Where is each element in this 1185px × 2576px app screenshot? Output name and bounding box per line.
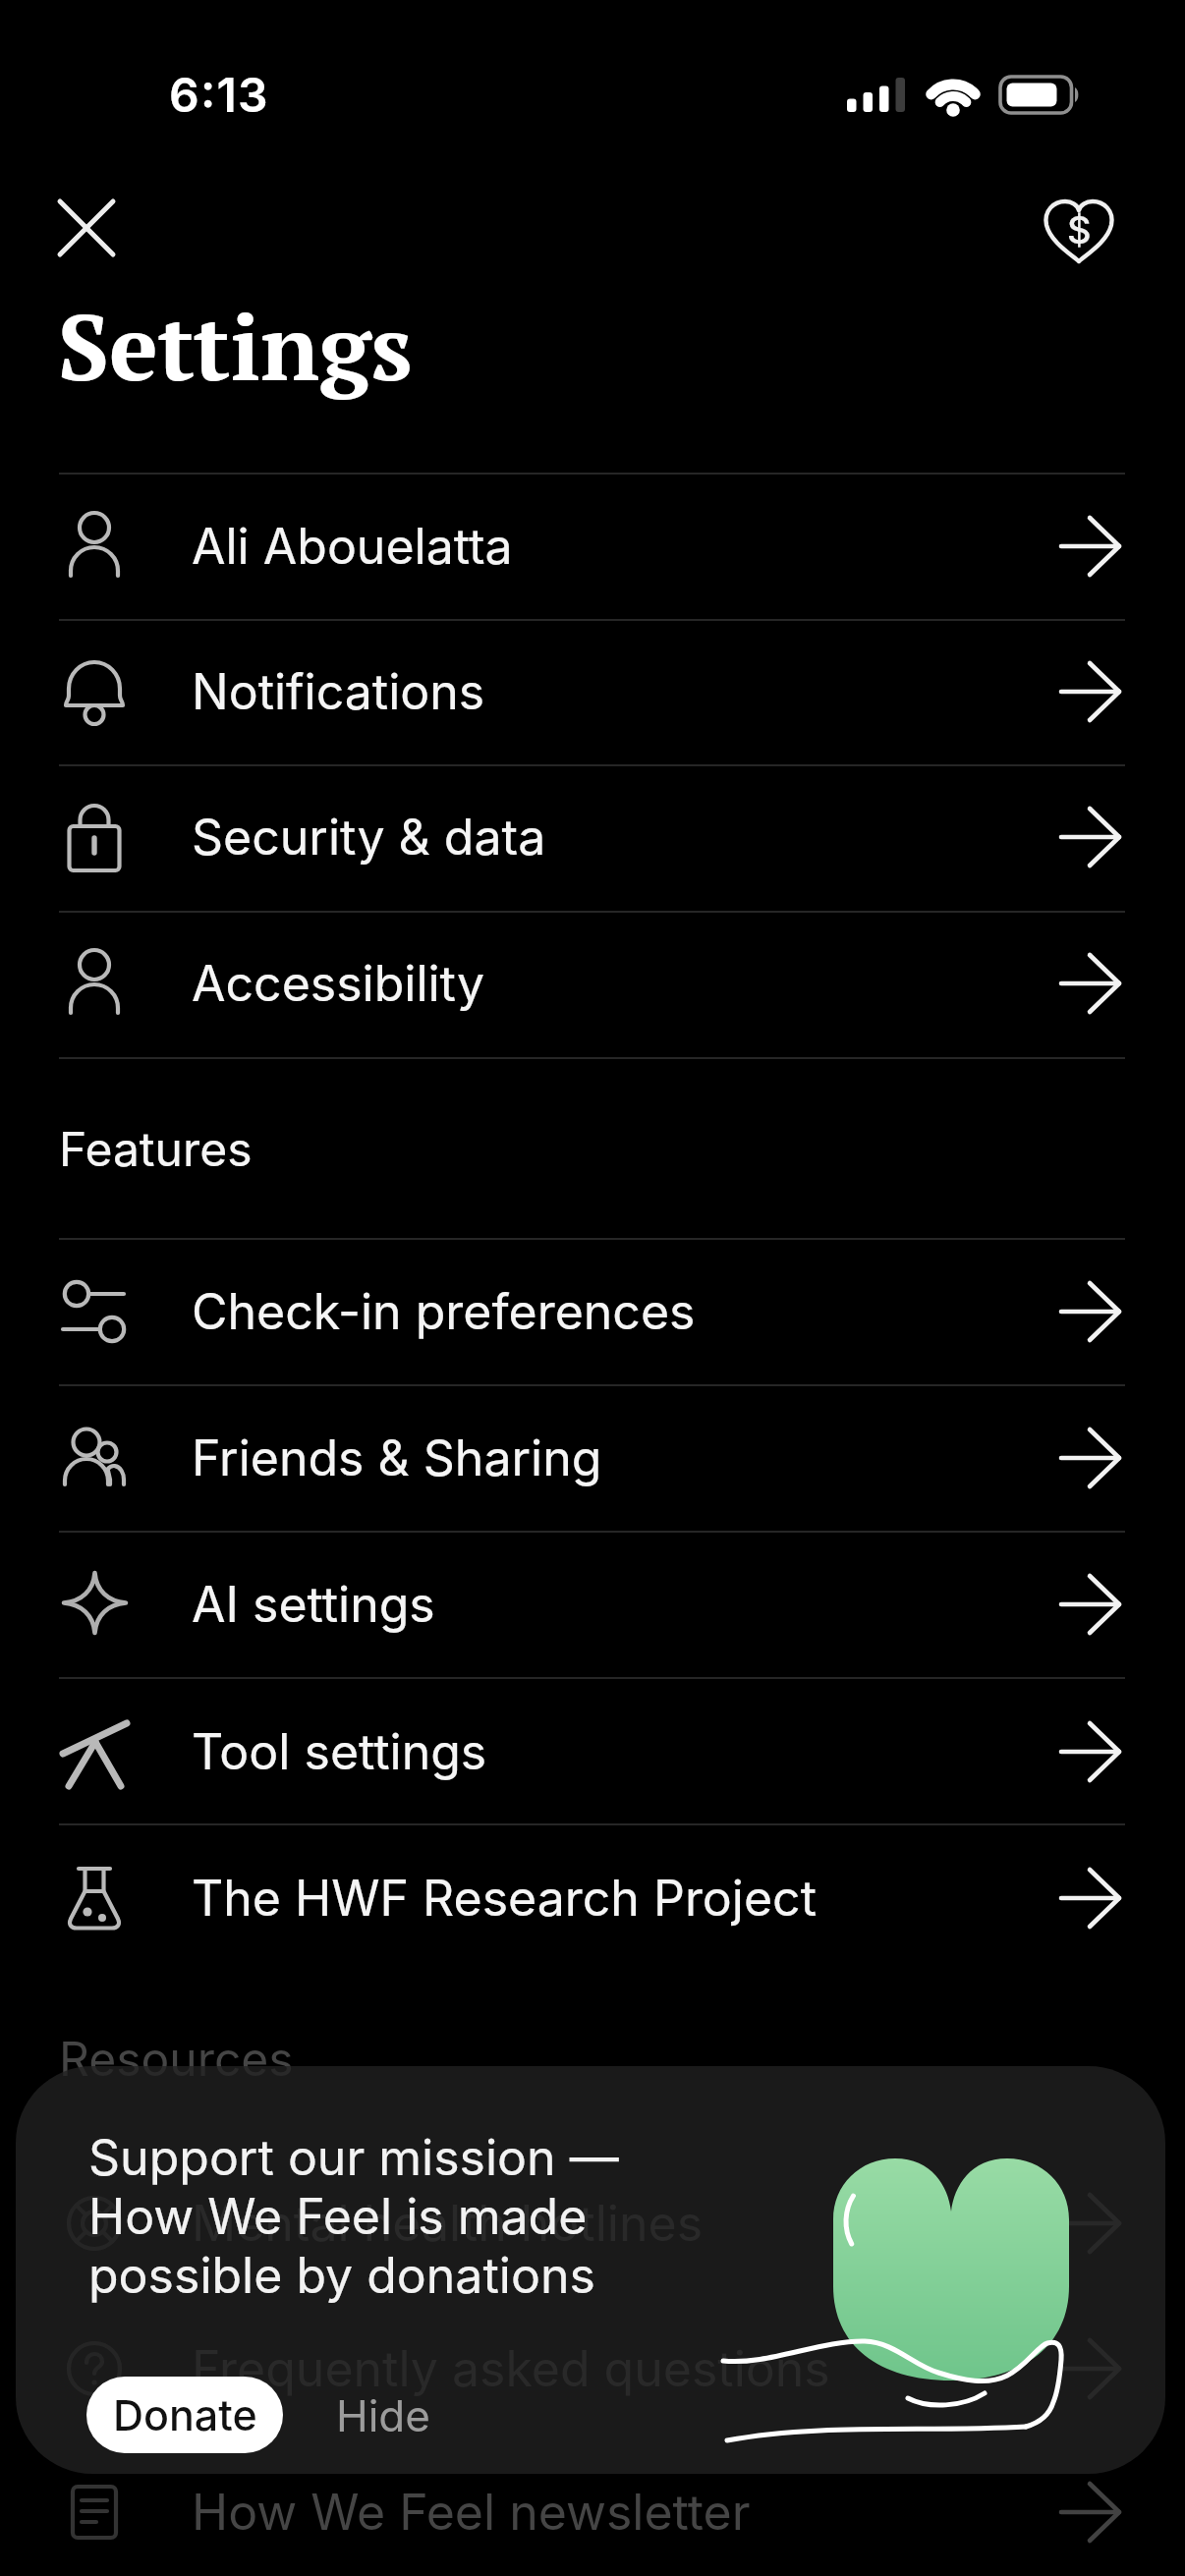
staticText: Notifications <box>192 662 485 721</box>
staticText: Resources <box>59 2030 294 2087</box>
button[interactable]: AI settings <box>0 1532 1185 1677</box>
button[interactable]: Hide <box>336 2377 430 2453</box>
button[interactable]: Tool settings <box>0 1679 1185 1824</box>
staticText: Accessibility <box>192 954 485 1013</box>
staticText: Frequently asked questions <box>192 2339 830 2398</box>
staticText: AI settings <box>192 1575 435 1634</box>
button[interactable]: How We Feel newsletter <box>0 2439 1185 2576</box>
staticText: Tool settings <box>192 1722 487 1781</box>
staticText: Mental health hotlines <box>192 2194 704 2253</box>
staticText: The HWF Research Project <box>192 1869 818 1928</box>
button[interactable]: Mental health hotlines <box>0 2151 1185 2296</box>
staticText: Settings <box>58 285 413 406</box>
staticText: $ <box>1067 207 1092 252</box>
button[interactable]: The HWF Research Project <box>0 1825 1185 1971</box>
button[interactable]: $ <box>1034 189 1124 279</box>
button[interactable]: Notifications <box>0 619 1185 764</box>
staticText: Check-in preferences <box>192 1282 696 1341</box>
staticText: Ali Abouelatta <box>192 517 513 576</box>
staticText: Features <box>59 1120 253 1177</box>
staticText: How We Feel newsletter <box>192 2483 751 2542</box>
button[interactable]: Donate <box>86 2377 283 2453</box>
button[interactable]: Frequently asked questions <box>0 2296 1185 2441</box>
staticText: Support our mission — How We Feel is mad… <box>88 2128 619 2305</box>
button[interactable]: Friends & Sharing <box>0 1385 1185 1531</box>
button[interactable]: Check-in preferences <box>0 1239 1185 1384</box>
staticText: Security & data <box>192 808 546 867</box>
staticText: Friends & Sharing <box>192 1428 602 1487</box>
button[interactable]: Accessibility <box>0 911 1185 1056</box>
staticText: Donate <box>113 2389 257 2440</box>
button[interactable]: Security & data <box>0 764 1185 910</box>
button[interactable] <box>47 189 126 267</box>
button[interactable]: Ali Abouelatta <box>0 474 1185 619</box>
staticText: 6:13 <box>169 66 269 123</box>
staticText: Hide <box>336 2389 430 2441</box>
